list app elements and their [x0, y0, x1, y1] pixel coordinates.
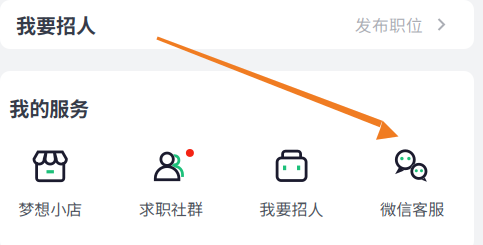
button[interactable]: 梦想小店: [0, 149, 110, 220]
staticText: 发布职位: [355, 12, 423, 36]
staticText: 我要招人: [16, 10, 96, 39]
button[interactable]: 我要招人: [0, 0, 474, 49]
button[interactable]: 微信客服: [352, 149, 473, 220]
staticText: 梦想小店: [18, 197, 82, 220]
button[interactable]: 我要招人: [231, 149, 352, 220]
staticText: 我要招人: [260, 197, 324, 220]
button[interactable]: 求职社群: [110, 149, 231, 220]
staticText: 我的服务: [9, 93, 89, 122]
staticText: 微信客服: [380, 197, 444, 220]
staticText: 求职社群: [139, 197, 203, 220]
